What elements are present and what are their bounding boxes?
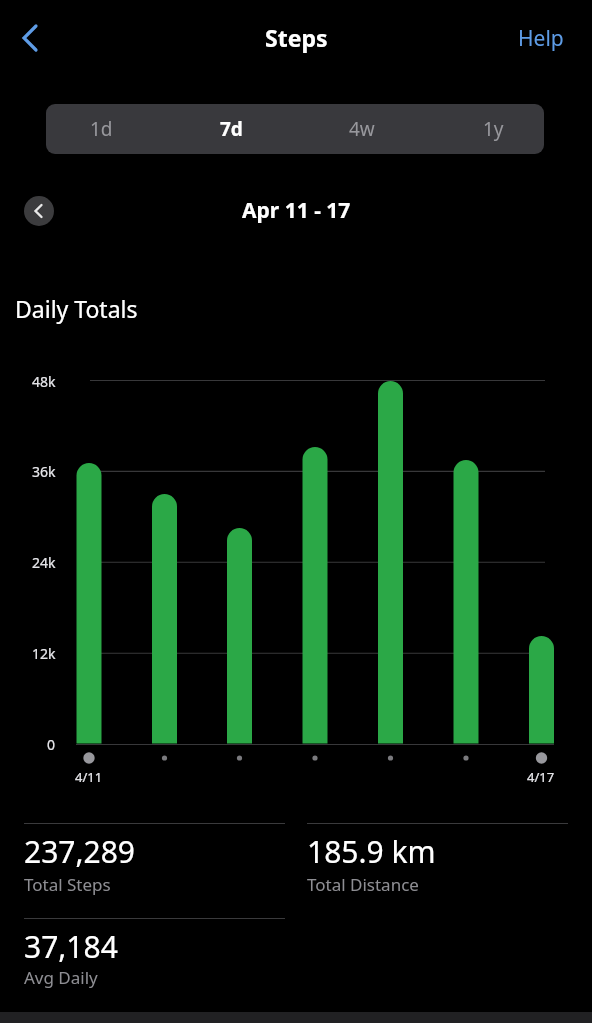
staticText: Daily Totals (15, 293, 138, 324)
staticText: 12k (32, 644, 56, 662)
button[interactable] (14, 18, 46, 58)
staticText: 4/17 (527, 768, 555, 786)
staticText: 4w (349, 116, 375, 142)
staticText: 7d (220, 116, 243, 142)
staticText: Total Steps (24, 873, 111, 896)
staticText: Help (518, 24, 564, 53)
button[interactable]: 7d (176, 104, 286, 154)
staticText: 1d (90, 116, 113, 142)
staticText: Apr 11 - 17 (242, 196, 351, 225)
staticText: 1y (483, 116, 504, 142)
staticText: 4/11 (75, 768, 103, 786)
button[interactable]: 4w (307, 104, 417, 154)
button[interactable] (24, 196, 54, 226)
button[interactable]: Help (506, 20, 576, 56)
staticText: Total Distance (307, 873, 419, 896)
staticText: 185.9 km (307, 831, 436, 872)
button[interactable]: 1y (438, 104, 544, 154)
staticText: Avg Daily (24, 966, 98, 989)
staticText: 0 (47, 735, 56, 753)
button[interactable]: 1d (46, 104, 156, 154)
staticText: 24k (32, 553, 56, 571)
staticText: Steps (265, 22, 328, 53)
staticText: 37,184 (24, 926, 118, 967)
staticText: 237,289 (24, 831, 135, 872)
staticText: 36k (32, 462, 56, 480)
staticText: 48k (32, 372, 56, 390)
